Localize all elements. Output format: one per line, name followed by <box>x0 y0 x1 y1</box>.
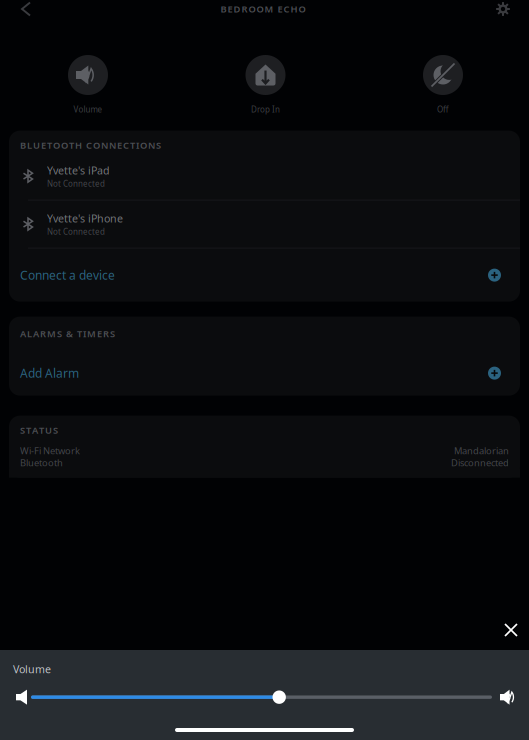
staticText: Yvette's iPad <box>47 163 110 177</box>
staticText: B L U E T O O T H C O N N E C T I O N S <box>20 139 161 151</box>
staticText: B E D R O O M E C H O <box>220 3 305 15</box>
staticText: Mandalorian <box>454 444 509 457</box>
staticText: Yvette's iPhone <box>47 211 123 225</box>
button[interactable]: Drop In <box>205 55 325 115</box>
button[interactable]: Add Alarm <box>9 351 520 396</box>
staticText: Disconnected <box>451 456 509 469</box>
staticText: Bluetooth <box>20 456 63 469</box>
staticText: Off <box>437 104 449 115</box>
button[interactable]: Volume up <box>496 687 517 707</box>
button[interactable]: Yvette's iPad <box>9 153 520 200</box>
staticText: Not Connected <box>47 178 105 189</box>
button[interactable]: Back <box>0 0 30 18</box>
staticText: Volume <box>13 662 51 676</box>
button[interactable]: Settings <box>496 0 529 18</box>
staticText: Add Alarm <box>20 365 79 381</box>
button[interactable]: Volume <box>28 55 148 115</box>
staticText: Wi-Fi Network <box>20 444 80 457</box>
staticText: Connect a device <box>20 267 115 283</box>
staticText: A L A R M S & T I M E R S <box>20 327 115 340</box>
button[interactable]: Yvette's iPhone <box>9 201 520 248</box>
staticText: S T A T U S <box>20 424 58 436</box>
staticText: Not Connected <box>47 226 105 237</box>
button[interactable]: Connect a device <box>9 249 520 302</box>
button[interactable]: Off <box>383 55 503 115</box>
button[interactable]: Volume down <box>16 687 36 707</box>
staticText: Volume <box>73 104 102 115</box>
staticText: Drop In <box>251 104 280 115</box>
button[interactable]: Close <box>493 615 529 645</box>
